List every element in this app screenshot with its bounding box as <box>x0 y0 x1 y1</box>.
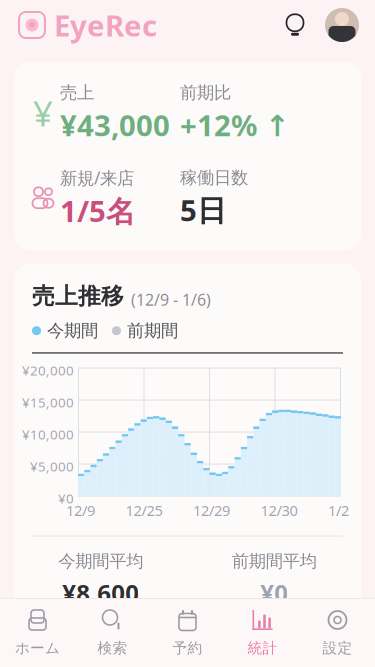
button[interactable]: 統計 <box>225 598 300 667</box>
staticText: ¥20,000 <box>22 361 74 379</box>
button[interactable]: Notifications <box>277 7 313 43</box>
staticText: 12/29 <box>193 500 230 520</box>
staticText: 1/5名 <box>60 191 135 230</box>
staticText: 今期間平均 <box>58 550 143 572</box>
staticText: ¥0 <box>58 489 74 507</box>
staticText: ¥43,000 <box>60 105 170 144</box>
staticText: 1/2 <box>328 500 349 520</box>
staticText: 前期間平均 <box>232 550 317 572</box>
staticText: 売上推移 <box>32 282 124 310</box>
staticText: ¥8,600 <box>62 577 139 609</box>
staticText: 売上 <box>60 82 94 103</box>
staticText: 統計 <box>247 639 277 657</box>
staticText: 前期間 <box>127 320 178 341</box>
staticText: 今期間 <box>47 320 98 341</box>
button[interactable]: ホーム <box>0 598 75 667</box>
staticText: 12/9 <box>66 500 95 520</box>
staticText: ¥0 <box>260 577 288 609</box>
staticText: 新規/来店 <box>60 166 134 189</box>
staticText: 前期比 <box>180 82 231 103</box>
staticText: 予約 <box>172 639 202 657</box>
staticText: 5日 <box>180 190 226 229</box>
staticText: 12/25 <box>125 500 162 520</box>
staticText: ¥15,000 <box>22 393 74 411</box>
staticText: 稼働日数 <box>180 167 248 188</box>
staticText: 設定 <box>322 639 352 657</box>
staticText: 検索 <box>97 639 127 657</box>
button[interactable]: Profile <box>313 8 359 42</box>
staticText: ¥5,000 <box>30 457 74 475</box>
button[interactable]: 検索 <box>75 598 150 667</box>
staticText: ¥ <box>33 90 53 136</box>
button[interactable]: 設定 <box>300 598 375 667</box>
button[interactable]: 予約 <box>150 598 225 667</box>
staticText: +12% <box>242 651 306 667</box>
staticText: (12/9 - 1/6) <box>131 289 211 310</box>
staticText: ¥43,000 <box>55 651 146 667</box>
staticText: 12/30 <box>260 500 297 520</box>
staticText: ホーム <box>15 639 60 657</box>
staticText: 今期間合計 <box>58 625 143 646</box>
staticText: 成長率 <box>249 625 300 646</box>
staticText: ¥10,000 <box>22 425 74 443</box>
staticText: +12% ↑ <box>180 105 290 144</box>
staticText: EyeRec <box>54 5 157 44</box>
